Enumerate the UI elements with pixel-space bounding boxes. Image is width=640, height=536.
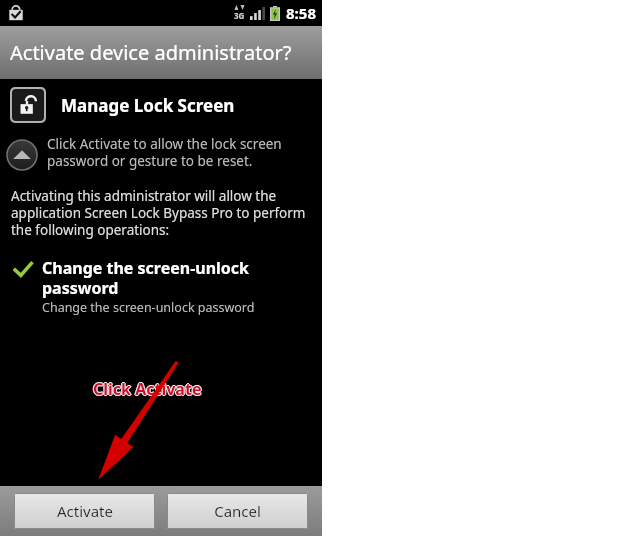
- staticText: 8:58: [286, 3, 316, 23]
- staticText: Change the screen-unlock password: [42, 299, 255, 316]
- staticText: Manage Lock Screen: [61, 94, 235, 117]
- button[interactable]: Activate: [14, 493, 155, 529]
- staticText: Click Activate to allow the lock screen …: [47, 135, 282, 170]
- staticText: Click Activate: [93, 377, 202, 399]
- staticText: 3G: [234, 10, 245, 21]
- staticText: Activate: [57, 501, 113, 521]
- other: Collapse details: [6, 139, 38, 171]
- staticText: Change the screen-unlock password: [42, 257, 250, 298]
- staticText: Cancel: [214, 501, 261, 521]
- staticText: Click Activate: [92, 378, 201, 400]
- staticText: Click Activate: [94, 378, 203, 400]
- button[interactable]: Collapse details: [6, 135, 310, 170]
- staticText: Click Activate: [93, 378, 202, 400]
- staticText: Click Activate: [93, 379, 202, 401]
- staticText: Activate device administrator?: [10, 39, 292, 66]
- staticText: Activating this administrator will allow…: [11, 187, 306, 239]
- button[interactable]: Cancel: [167, 493, 308, 529]
